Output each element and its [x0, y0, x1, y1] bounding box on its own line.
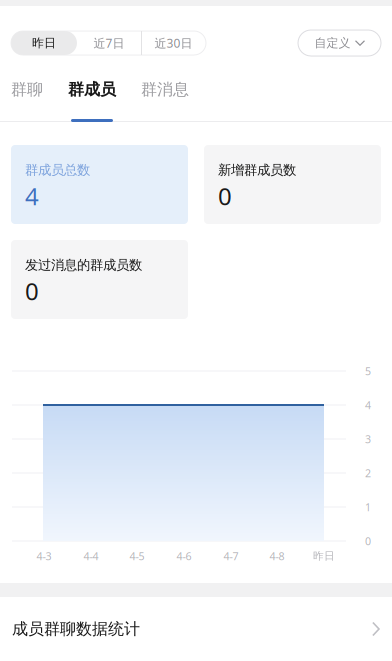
- button[interactable]: 自定义: [298, 30, 381, 56]
- button[interactable]: 发过消息的群成员数: [11, 240, 188, 319]
- staticText: 0: [218, 180, 232, 212]
- staticText: 发过消息的群成员数: [25, 257, 142, 273]
- button[interactable]: 群聊: [11, 56, 43, 122]
- staticText: 4: [25, 180, 39, 212]
- staticText: 新增群成员数: [218, 162, 296, 178]
- staticText: 昨日: [313, 549, 335, 562]
- staticText: 群消息: [141, 80, 189, 99]
- button[interactable]: 昨日: [11, 31, 77, 55]
- staticText: 4-8: [269, 549, 284, 563]
- button[interactable]: 成员群聊数据统计: [0, 597, 392, 661]
- staticText: 4: [365, 398, 371, 412]
- staticText: 群成员: [68, 80, 116, 99]
- button[interactable]: 群消息: [140, 56, 190, 122]
- button[interactable]: 群成员: [67, 56, 117, 122]
- button[interactable]: 群成员总数: [11, 145, 188, 224]
- button[interactable]: 近7日: [77, 31, 141, 55]
- staticText: 0: [25, 275, 39, 307]
- staticText: 4-3: [36, 549, 51, 563]
- staticText: 4-5: [129, 549, 144, 563]
- staticText: 4-6: [176, 549, 191, 563]
- staticText: 近7日: [93, 35, 124, 51]
- staticText: 1: [365, 500, 371, 514]
- staticText: 3: [365, 432, 371, 446]
- staticText: 4-4: [83, 549, 98, 563]
- staticText: 成员群聊数据统计: [12, 619, 140, 639]
- staticText: 昨日: [32, 36, 56, 50]
- staticText: 2: [365, 466, 371, 480]
- button[interactable]: 近30日: [141, 31, 206, 55]
- button[interactable]: 新增群成员数: [204, 145, 381, 224]
- staticText: 群聊: [11, 80, 43, 99]
- staticText: 0: [365, 534, 371, 548]
- staticText: 近30日: [154, 35, 192, 51]
- staticText: 5: [365, 364, 371, 378]
- staticText: 自定义: [314, 36, 350, 50]
- staticText: 群成员总数: [25, 162, 90, 178]
- staticText: 4-7: [223, 549, 238, 563]
